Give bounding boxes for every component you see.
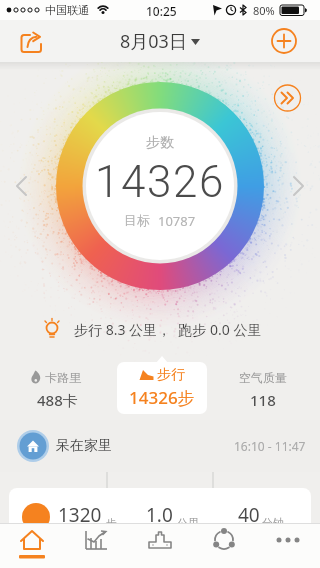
button[interactable] <box>10 24 50 60</box>
staticText: 118 <box>250 390 276 410</box>
staticText: 卡路里 <box>45 370 81 385</box>
staticText: 空气质量 <box>239 370 287 385</box>
button[interactable]: 8月03日 <box>120 29 200 54</box>
staticText: 分钟 <box>262 516 284 530</box>
staticText: 14326步 <box>129 386 195 409</box>
staticText: 16:10 - 11:47 <box>234 438 306 454</box>
staticText: 80% <box>253 3 275 18</box>
staticText: 10:25 <box>146 3 177 19</box>
button[interactable] <box>64 523 128 568</box>
staticText: 步行 8.3 公里， 跑步 0.0 公里 <box>74 320 262 339</box>
staticText: 中国联通 <box>45 3 89 17</box>
button[interactable] <box>0 523 64 568</box>
button[interactable] <box>128 523 192 568</box>
button[interactable] <box>192 523 256 568</box>
staticText: 步 <box>106 516 117 530</box>
button[interactable]: 呆在家里 <box>0 420 320 472</box>
staticText: 10787 <box>158 212 196 230</box>
staticText: 步数 <box>146 134 174 152</box>
button[interactable] <box>265 24 305 60</box>
staticText: 488卡 <box>37 390 78 410</box>
staticText: 呆在家里 <box>56 437 112 455</box>
staticText: 步行 <box>157 366 185 384</box>
staticText: 14326 <box>95 156 226 208</box>
staticText: 目标 <box>124 212 150 228</box>
button[interactable] <box>256 523 320 568</box>
staticText: 1.0 <box>146 502 173 528</box>
staticText: 公里 <box>177 516 199 530</box>
button[interactable] <box>8 172 36 200</box>
button[interactable]: 步行 <box>117 362 207 414</box>
staticText: 40 <box>238 502 260 528</box>
staticText: 1320 <box>58 502 102 528</box>
button[interactable] <box>284 172 312 200</box>
button[interactable]: 1320 <box>9 488 311 568</box>
button[interactable] <box>274 84 302 112</box>
staticText: 8月03日 <box>120 29 187 54</box>
